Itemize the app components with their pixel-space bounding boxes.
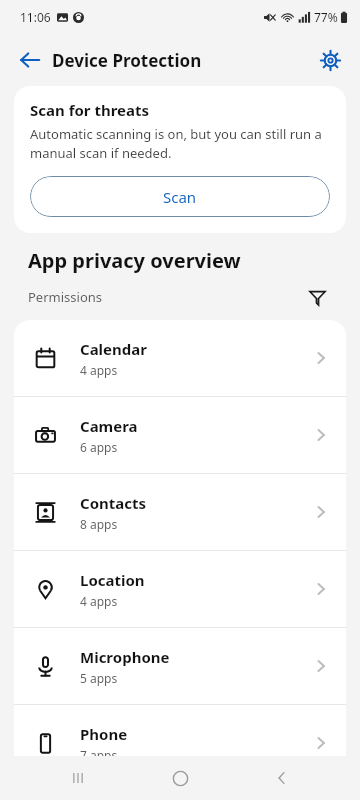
button[interactable]: Location <box>14 551 346 627</box>
staticText: Device Protection <box>52 49 202 72</box>
button[interactable]: Scan <box>30 176 330 217</box>
staticText: 4 apps <box>80 593 118 609</box>
staticText: 77% <box>314 9 338 25</box>
button[interactable]: Back <box>8 38 52 82</box>
staticText: Contacts <box>80 493 147 513</box>
staticText: Microphone <box>80 647 170 667</box>
staticText: Phone <box>80 724 128 744</box>
button[interactable]: Contacts <box>14 474 346 550</box>
staticText: Automatic scanning is on, but you can st… <box>30 125 330 162</box>
button[interactable]: Filter <box>302 282 332 312</box>
button[interactable]: Camera <box>14 397 346 473</box>
button[interactable]: Home <box>156 756 204 800</box>
staticText: 8 apps <box>80 516 118 532</box>
staticText: Calendar <box>80 339 147 359</box>
button[interactable]: Phone <box>14 705 346 781</box>
button[interactable]: Settings <box>308 38 352 82</box>
staticText: 5 apps <box>80 670 118 686</box>
staticText: 6 apps <box>80 439 118 455</box>
staticText: Location <box>80 570 145 590</box>
staticText: Scan <box>163 187 197 207</box>
button[interactable]: Calendar <box>14 320 346 396</box>
button[interactable]: Microphone <box>14 628 346 704</box>
button[interactable]: Back <box>258 756 306 800</box>
staticText: Scan for threats <box>30 100 150 120</box>
staticText: Camera <box>80 416 138 436</box>
staticText: Permissions <box>28 288 103 306</box>
button[interactable]: Recents <box>54 756 102 800</box>
staticText: App privacy overview <box>28 247 241 274</box>
staticText: 4 apps <box>80 362 118 378</box>
staticText: 7 apps <box>80 747 118 763</box>
staticText: 11:06 <box>20 9 51 25</box>
